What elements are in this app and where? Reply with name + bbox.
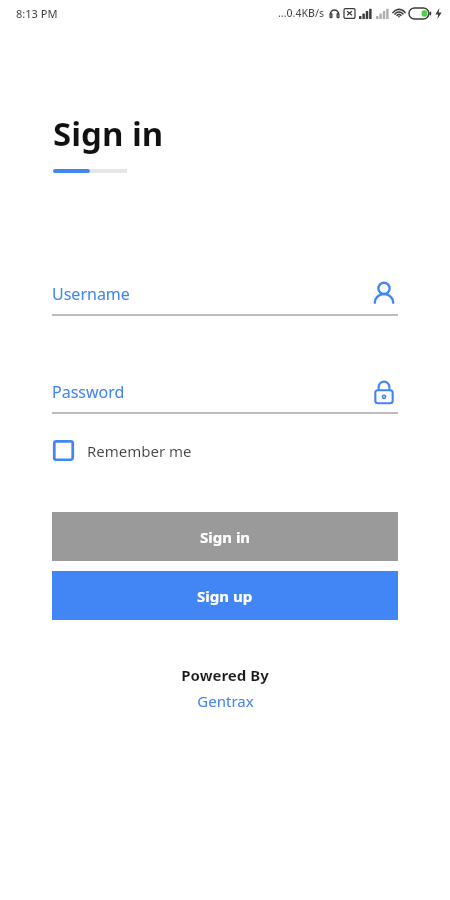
staticText: ...0.4KB/s bbox=[278, 6, 325, 20]
staticText: 8:13 PM bbox=[16, 6, 58, 21]
button[interactable]: Sign in bbox=[52, 512, 398, 561]
staticText: Remember me bbox=[87, 441, 192, 461]
staticText: Sign in bbox=[53, 111, 164, 156]
button[interactable]: Username bbox=[52, 280, 398, 308]
staticText: Password bbox=[52, 381, 370, 403]
button[interactable]: Password bbox=[52, 378, 398, 406]
staticText: Sign up bbox=[197, 586, 253, 606]
button[interactable]: Remember me bbox=[53, 436, 202, 465]
button[interactable]: Gentrax bbox=[197, 691, 254, 711]
other: Username bbox=[370, 280, 398, 308]
staticText: Sign in bbox=[200, 527, 251, 547]
staticText: Powered By bbox=[181, 665, 269, 685]
other: Password bbox=[370, 378, 398, 406]
staticText: Gentrax bbox=[197, 691, 254, 711]
staticText: Username bbox=[52, 283, 370, 305]
button[interactable]: Sign up bbox=[52, 571, 398, 620]
